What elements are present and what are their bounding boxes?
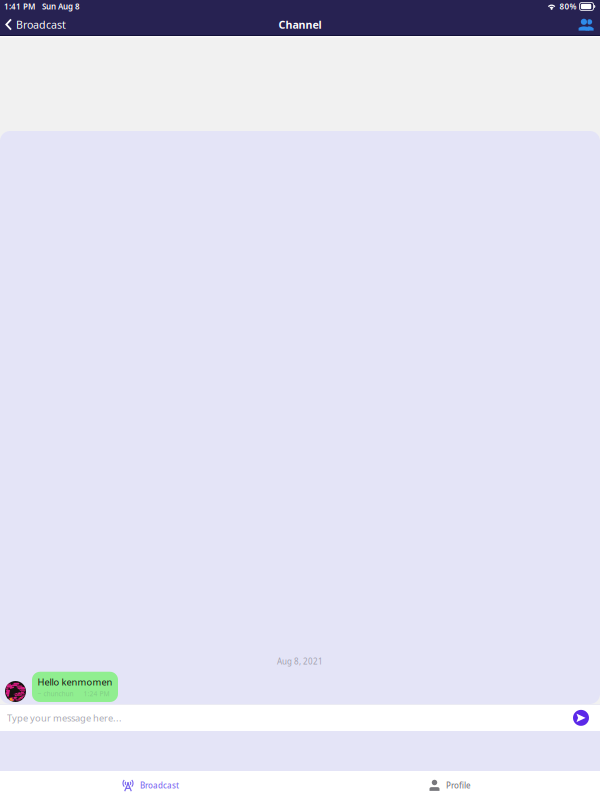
staticText: Sun Aug 8: [42, 1, 80, 12]
staticText: Channel: [278, 17, 321, 32]
button[interactable]: Broadcast: [0, 771, 300, 800]
staticText: ~ chunchun: [37, 689, 73, 698]
button[interactable]: Broadcast: [0, 14, 71, 35]
staticText: Broadcast: [16, 17, 66, 32]
staticText: Broadcast: [140, 780, 179, 791]
button[interactable]: Send: [571, 708, 591, 728]
button[interactable]: Profile: [300, 771, 600, 800]
staticText: Hello kenmomen: [37, 676, 112, 688]
staticText: 1:41 PM: [4, 1, 35, 12]
staticText: Aug 8, 2021: [277, 656, 323, 667]
staticText: Profile: [446, 780, 471, 791]
button[interactable]: Members: [572, 15, 600, 34]
staticText: 80%: [559, 1, 576, 12]
staticText: 1:24 PM: [83, 689, 109, 698]
staticText: Type your message here...: [7, 712, 122, 724]
